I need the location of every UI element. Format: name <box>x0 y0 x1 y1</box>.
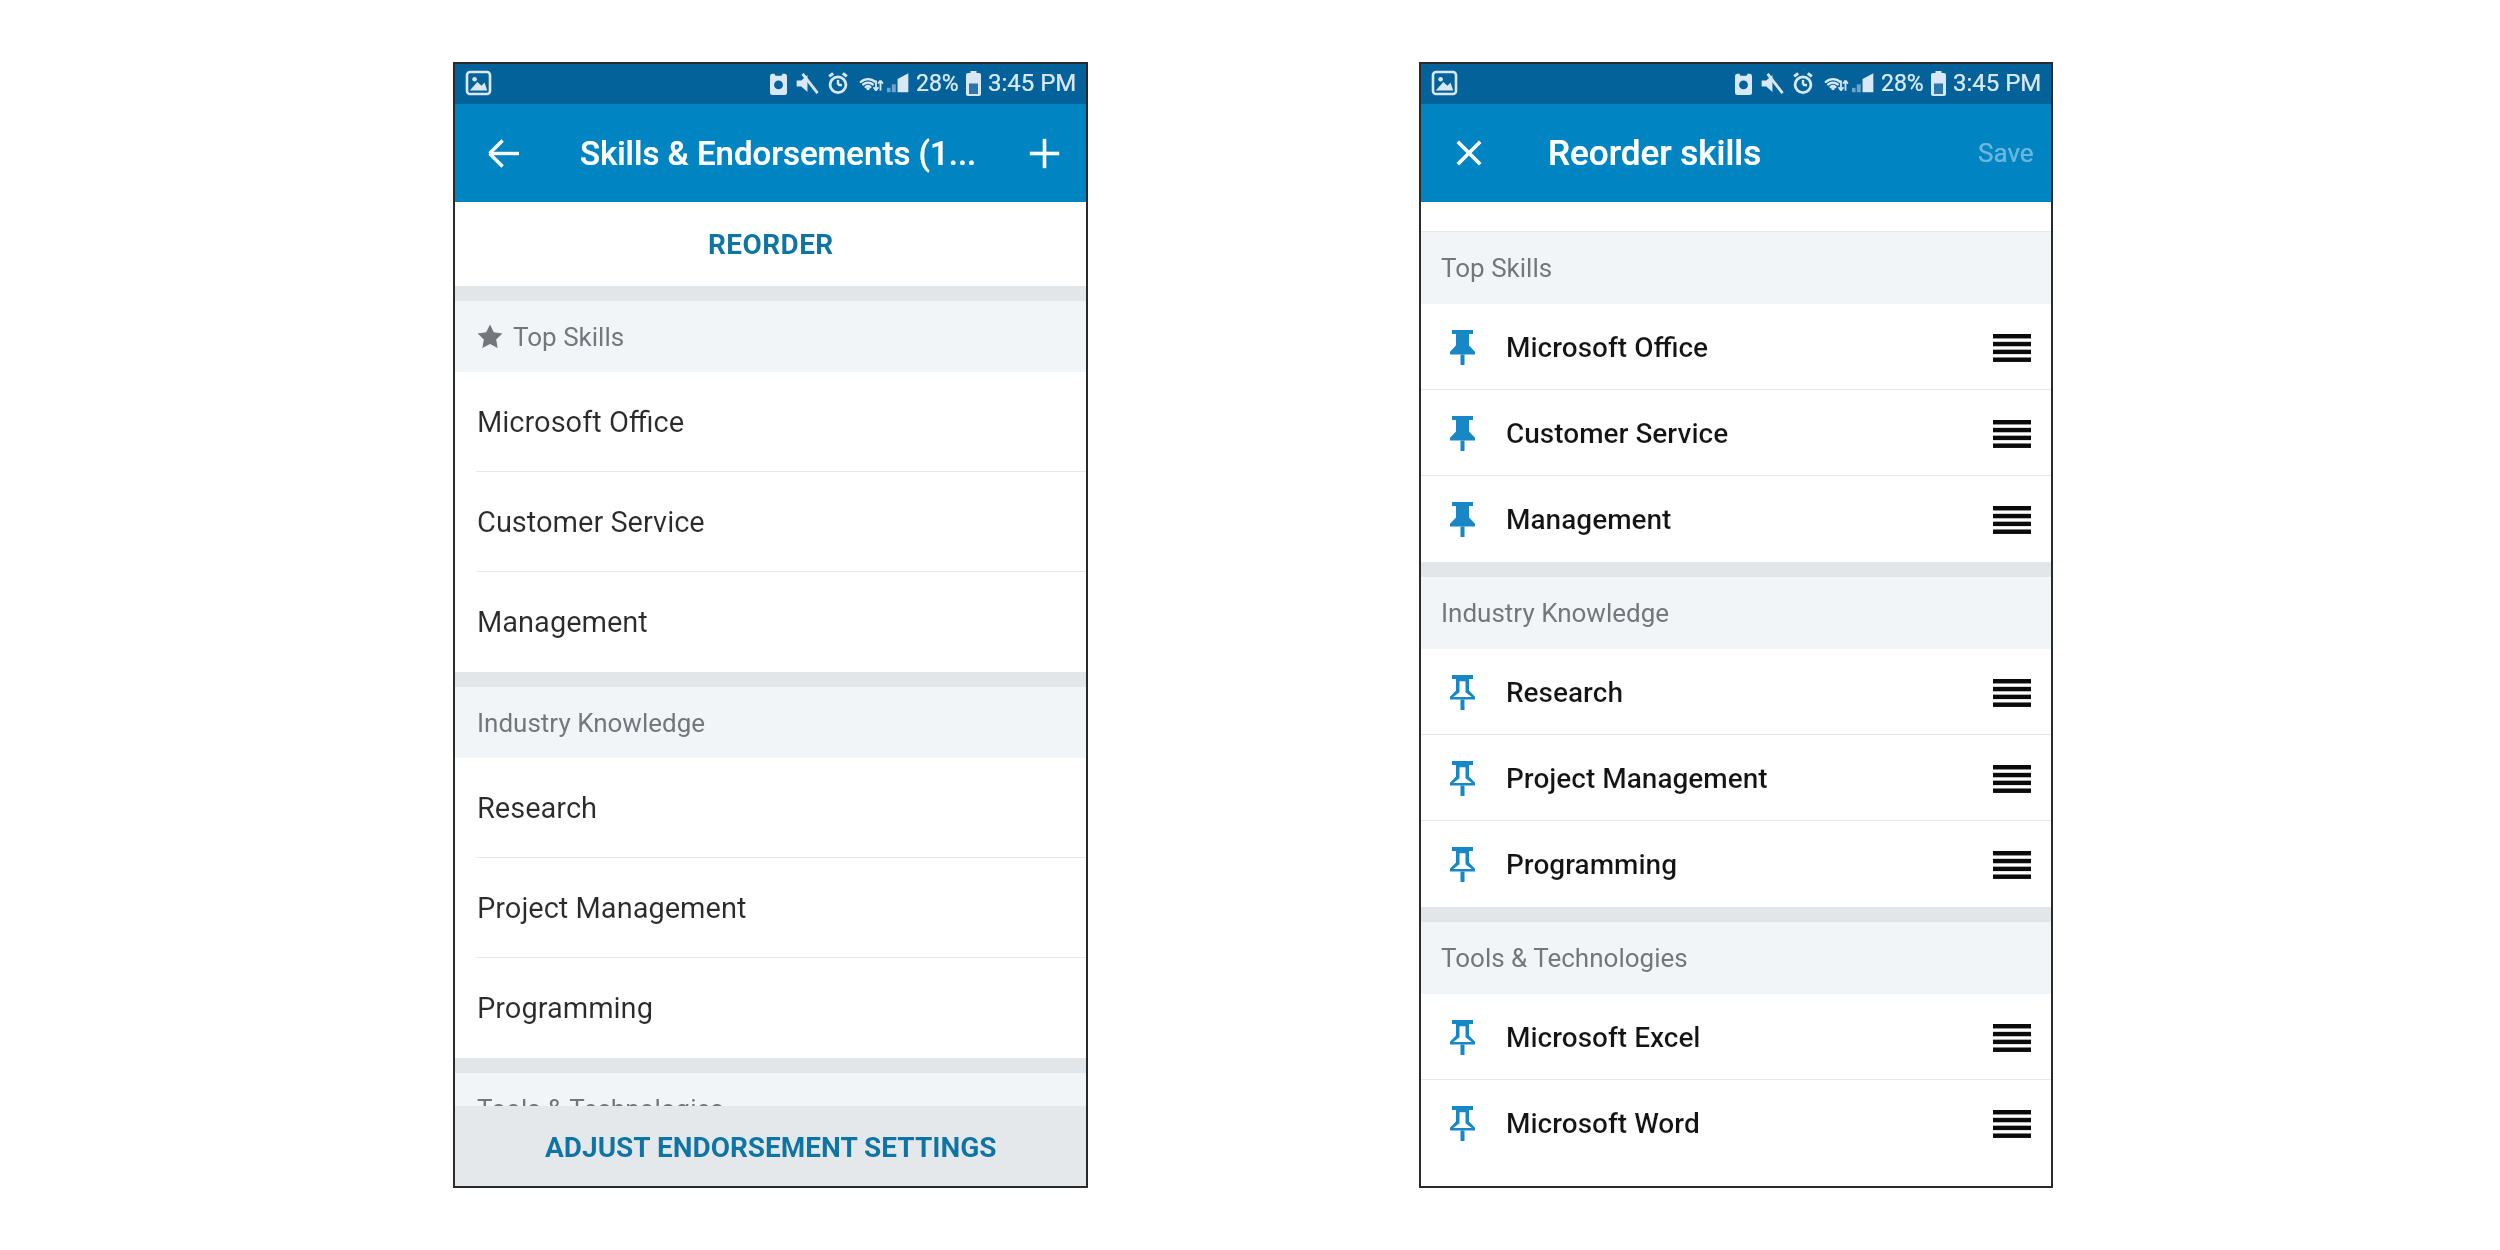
staticText: Microsoft Office <box>477 405 685 439</box>
button[interactable]: Reorder handle <box>1990 1017 2034 1057</box>
staticText: Management <box>477 605 648 639</box>
staticText: REORDER <box>708 228 834 261</box>
button[interactable]: Research <box>1419 649 2053 735</box>
staticText: Top Skills <box>1441 253 1553 283</box>
button[interactable]: Reorder handle <box>1990 1103 2034 1143</box>
staticText: Tools & Technologies <box>477 1094 724 1124</box>
staticText: Customer Service <box>1506 417 1729 450</box>
staticText: Industry Knowledge <box>1441 598 1670 628</box>
staticText: Management <box>1506 503 1672 536</box>
staticText: Top Skills <box>513 322 625 352</box>
staticText: Project Management <box>1506 762 1768 795</box>
button[interactable]: Project Management <box>1419 735 2053 821</box>
button[interactable]: Microsoft Office <box>453 372 1088 472</box>
button[interactable]: Reorder handle <box>1990 844 2034 884</box>
button[interactable]: Reorder handle <box>1990 499 2034 539</box>
staticText: Reorder skills <box>1548 133 1762 174</box>
button[interactable]: Customer Service <box>453 472 1088 572</box>
button[interactable]: Reorder handle <box>1990 413 2034 453</box>
staticText: 3:45 PM <box>988 69 1077 97</box>
staticText: Research <box>1506 676 1623 709</box>
staticText: 28% <box>1881 70 1924 97</box>
staticText: 3:45 PM <box>1953 69 2042 97</box>
button[interactable]: Management <box>453 572 1088 672</box>
staticText: Programming <box>477 991 653 1025</box>
staticText: Microsoft Office <box>1506 331 1709 364</box>
button[interactable]: ADJUST ENDORSEMENT SETTINGS <box>453 1106 1088 1188</box>
button[interactable]: Research <box>453 758 1088 858</box>
button[interactable]: Programming <box>453 958 1088 1058</box>
button[interactable]: Microsoft Excel <box>1419 994 2053 1080</box>
staticText: Project Management <box>477 891 747 925</box>
button[interactable]: Back <box>470 120 536 186</box>
staticText: Tools & Technologies <box>1441 943 1688 973</box>
button[interactable]: Management <box>1419 476 2053 562</box>
staticText: Microsoft Word <box>1506 1107 1700 1140</box>
button[interactable]: REORDER <box>453 202 1088 286</box>
staticText: Microsoft Excel <box>1506 1021 1701 1054</box>
staticText: Research <box>477 791 598 825</box>
button[interactable]: Reorder handle <box>1990 672 2034 712</box>
button[interactable]: Reorder handle <box>1990 758 2034 798</box>
staticText: Save <box>1978 138 2034 168</box>
staticText: Programming <box>1506 848 1678 881</box>
button[interactable]: Customer Service <box>1419 390 2053 476</box>
button[interactable]: Add skill <box>1013 122 1075 184</box>
staticText: 28% <box>916 70 959 97</box>
button[interactable]: Project Management <box>453 858 1088 958</box>
button[interactable]: Close <box>1438 122 1500 184</box>
staticText: ADJUST ENDORSEMENT SETTINGS <box>545 1131 997 1164</box>
staticText: Skills & Endorsements (1... <box>580 134 977 173</box>
staticText: Industry Knowledge <box>477 708 706 738</box>
button[interactable]: Programming <box>1419 821 2053 907</box>
button[interactable]: Microsoft Office <box>1419 304 2053 390</box>
button[interactable]: Microsoft Word <box>1419 1080 2053 1166</box>
button[interactable]: Save <box>1956 124 2053 182</box>
button[interactable]: Reorder handle <box>1990 327 2034 367</box>
staticText: Customer Service <box>477 505 705 539</box>
